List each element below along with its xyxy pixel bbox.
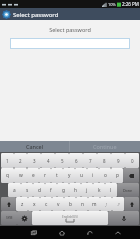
- staticText: q: [6, 172, 9, 179]
- staticText: g: [62, 187, 65, 194]
- button[interactable]: 6: [69, 153, 83, 168]
- button[interactable]: r: [39, 168, 51, 183]
- button[interactable]: Done: [117, 183, 139, 197]
- button[interactable]: m: [88, 197, 100, 211]
- button[interactable]: e: [27, 168, 39, 183]
- other: Shift: [124, 197, 139, 211]
- staticText: j: [86, 187, 88, 194]
- staticText: Done: [123, 188, 133, 193]
- other: Voice input: [108, 211, 139, 225]
- staticText: a: [13, 187, 16, 194]
- staticText: 4: [47, 158, 50, 164]
- button[interactable]: 8: [97, 153, 111, 168]
- staticText: u: [80, 172, 83, 179]
- staticText: Cancel: [26, 143, 44, 150]
- button[interactable]: t: [51, 168, 63, 183]
- button[interactable]: Backspace: [123, 168, 139, 183]
- button[interactable]: u: [75, 168, 87, 183]
- button[interactable]: Voice input: [108, 211, 139, 225]
- button[interactable]: q: [1, 168, 14, 183]
- button[interactable]: Back: [76, 226, 104, 239]
- other: Shift: [1, 197, 16, 211]
- staticText: i: [92, 172, 94, 179]
- button[interactable]: a: [8, 183, 21, 197]
- staticText: b: [69, 201, 72, 208]
- button[interactable]: f: [45, 183, 57, 197]
- button[interactable]: g: [57, 183, 69, 197]
- button[interactable]: 5: [55, 153, 69, 168]
- staticText: k: [98, 187, 101, 194]
- button[interactable]: l: [105, 183, 117, 197]
- button[interactable]: d: [33, 183, 45, 197]
- button[interactable]: 1: [1, 153, 14, 168]
- button[interactable]: 0: [125, 153, 139, 168]
- staticText: s: [26, 187, 29, 194]
- staticText: z: [21, 201, 24, 208]
- other: Space: [32, 211, 108, 225]
- staticText: 1: [6, 158, 9, 164]
- staticText: c: [45, 201, 48, 208]
- button[interactable]: y: [63, 168, 75, 183]
- button[interactable]: i: [87, 168, 99, 183]
- staticText: 10%: [108, 2, 116, 7]
- button[interactable]: w: [14, 168, 27, 183]
- staticText: o: [104, 172, 107, 179]
- button[interactable]: s: [21, 183, 33, 197]
- button[interactable]: Hide keyboard: [104, 226, 132, 239]
- button[interactable]: Cancel: [0, 141, 69, 152]
- button[interactable]: Settings: [17, 211, 32, 225]
- staticText: x: [33, 201, 36, 208]
- staticText: 6: [75, 158, 78, 164]
- staticText: h: [74, 187, 77, 194]
- button[interactable]: 9: [111, 153, 125, 168]
- button[interactable]: h: [69, 183, 81, 197]
- staticText: 5: [61, 158, 64, 164]
- button[interactable]: z: [16, 197, 28, 211]
- staticText: Select password: [13, 11, 59, 19]
- staticText: Select password: [0, 26, 140, 33]
- button[interactable]: o: [99, 168, 111, 183]
- button[interactable]: 7: [83, 153, 97, 168]
- button[interactable]: 4: [41, 153, 55, 168]
- button[interactable]: n: [76, 197, 88, 211]
- other: Settings: [17, 211, 32, 225]
- button[interactable]: 3: [27, 153, 41, 168]
- staticText: SYM: [6, 216, 13, 220]
- staticText: 2:26 PM: [122, 1, 139, 7]
- staticText: l: [110, 187, 112, 194]
- button[interactable]: b: [64, 197, 76, 211]
- button[interactable]: [10, 38, 130, 49]
- button[interactable]: SYM: [1, 211, 17, 225]
- staticText: n: [81, 201, 84, 208]
- staticText: 7: [89, 158, 92, 164]
- staticText: English(US): [62, 215, 78, 219]
- staticText: y: [68, 172, 71, 179]
- button[interactable]: ,!: [100, 197, 112, 211]
- button[interactable]: Shift: [1, 197, 16, 211]
- button[interactable]: k: [93, 183, 105, 197]
- button[interactable]: x: [28, 197, 40, 211]
- button[interactable]: Home: [48, 226, 76, 239]
- staticText: 2: [19, 158, 22, 164]
- button[interactable]: Shift: [124, 197, 139, 211]
- button[interactable]: p: [111, 168, 123, 183]
- button[interactable]: 2: [14, 153, 27, 168]
- staticText: m: [92, 201, 97, 208]
- staticText: p: [116, 172, 119, 179]
- button[interactable]: v: [52, 197, 64, 211]
- button[interactable]: .?: [112, 197, 124, 211]
- staticText: t: [56, 172, 58, 179]
- staticText: 9: [117, 158, 120, 164]
- button[interactable]: Continue: [70, 141, 140, 152]
- button[interactable]: c: [40, 197, 52, 211]
- button[interactable]: Space: [32, 211, 108, 225]
- button[interactable]: j: [81, 183, 93, 197]
- button[interactable]: Recents: [20, 226, 48, 239]
- other: App icon: [2, 10, 11, 19]
- staticText: v: [57, 201, 60, 208]
- staticText: d: [38, 187, 41, 194]
- staticText: e: [32, 172, 35, 179]
- staticText: 8: [103, 158, 106, 164]
- staticText: f: [50, 187, 52, 194]
- staticText: w: [19, 172, 23, 179]
